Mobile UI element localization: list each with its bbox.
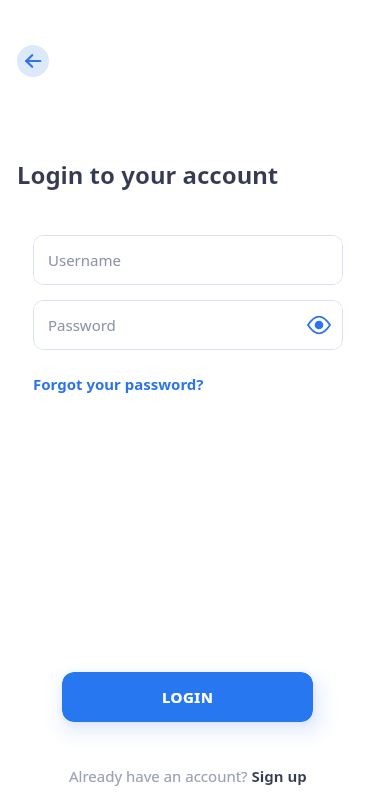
button[interactable] [17, 45, 49, 77]
button[interactable]: Username [33, 235, 343, 285]
button[interactable]: LOGIN [62, 672, 313, 722]
staticText: Forgot your password? [33, 374, 204, 394]
button[interactable] [307, 313, 331, 337]
staticText: Already have an account? Sign up [69, 766, 307, 786]
staticText: Login to your account [17, 158, 279, 191]
staticText: Username [48, 250, 121, 270]
staticText: Password [48, 315, 116, 335]
button[interactable]: Already have an account? Sign up [69, 766, 307, 786]
staticText: LOGIN [162, 687, 214, 707]
button[interactable]: Forgot your password? [33, 374, 204, 394]
button[interactable]: Password [33, 300, 343, 350]
